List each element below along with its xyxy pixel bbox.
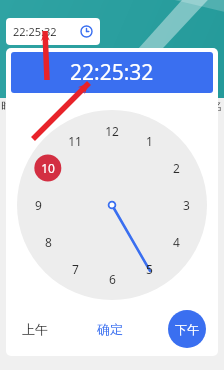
staticText: 时	[1, 99, 12, 113]
other: Pick time	[80, 25, 93, 38]
staticText: 5	[146, 261, 153, 277]
staticText: 1	[146, 133, 153, 149]
button[interactable]: 上午	[18, 317, 52, 341]
button[interactable]: 确定	[93, 317, 127, 341]
staticText: 8	[45, 234, 52, 250]
staticText: 22:25:32	[13, 24, 80, 39]
staticText: 12	[105, 123, 119, 139]
button[interactable]: 下午	[168, 310, 206, 348]
button[interactable]: 22:25:32	[11, 52, 213, 93]
staticText: 22:25:32	[70, 58, 154, 87]
staticText: 下午	[175, 322, 199, 337]
button[interactable]: Clock dial	[17, 110, 207, 300]
staticText: 9	[35, 197, 42, 213]
staticText: 6	[109, 271, 116, 287]
button[interactable]: 22:25:32	[6, 18, 100, 45]
staticText: 上午	[22, 321, 48, 337]
staticText: 7	[72, 261, 79, 277]
staticText: 确定	[97, 321, 123, 337]
staticText: 3	[183, 197, 190, 213]
staticText: 2	[173, 160, 180, 176]
staticText: 名	[211, 99, 222, 113]
staticText: 10	[41, 160, 55, 176]
staticText: 4	[173, 234, 180, 250]
staticText: 11	[68, 133, 82, 149]
